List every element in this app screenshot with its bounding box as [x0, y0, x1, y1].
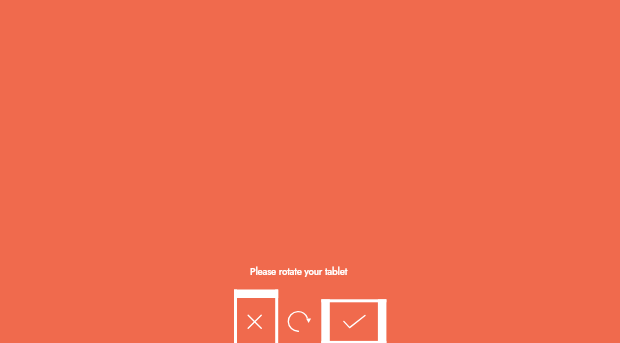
- staticText: Please rotate your tablet: [250, 265, 348, 279]
- other: Rotate your tablet to landscape: [0, 0, 620, 343]
